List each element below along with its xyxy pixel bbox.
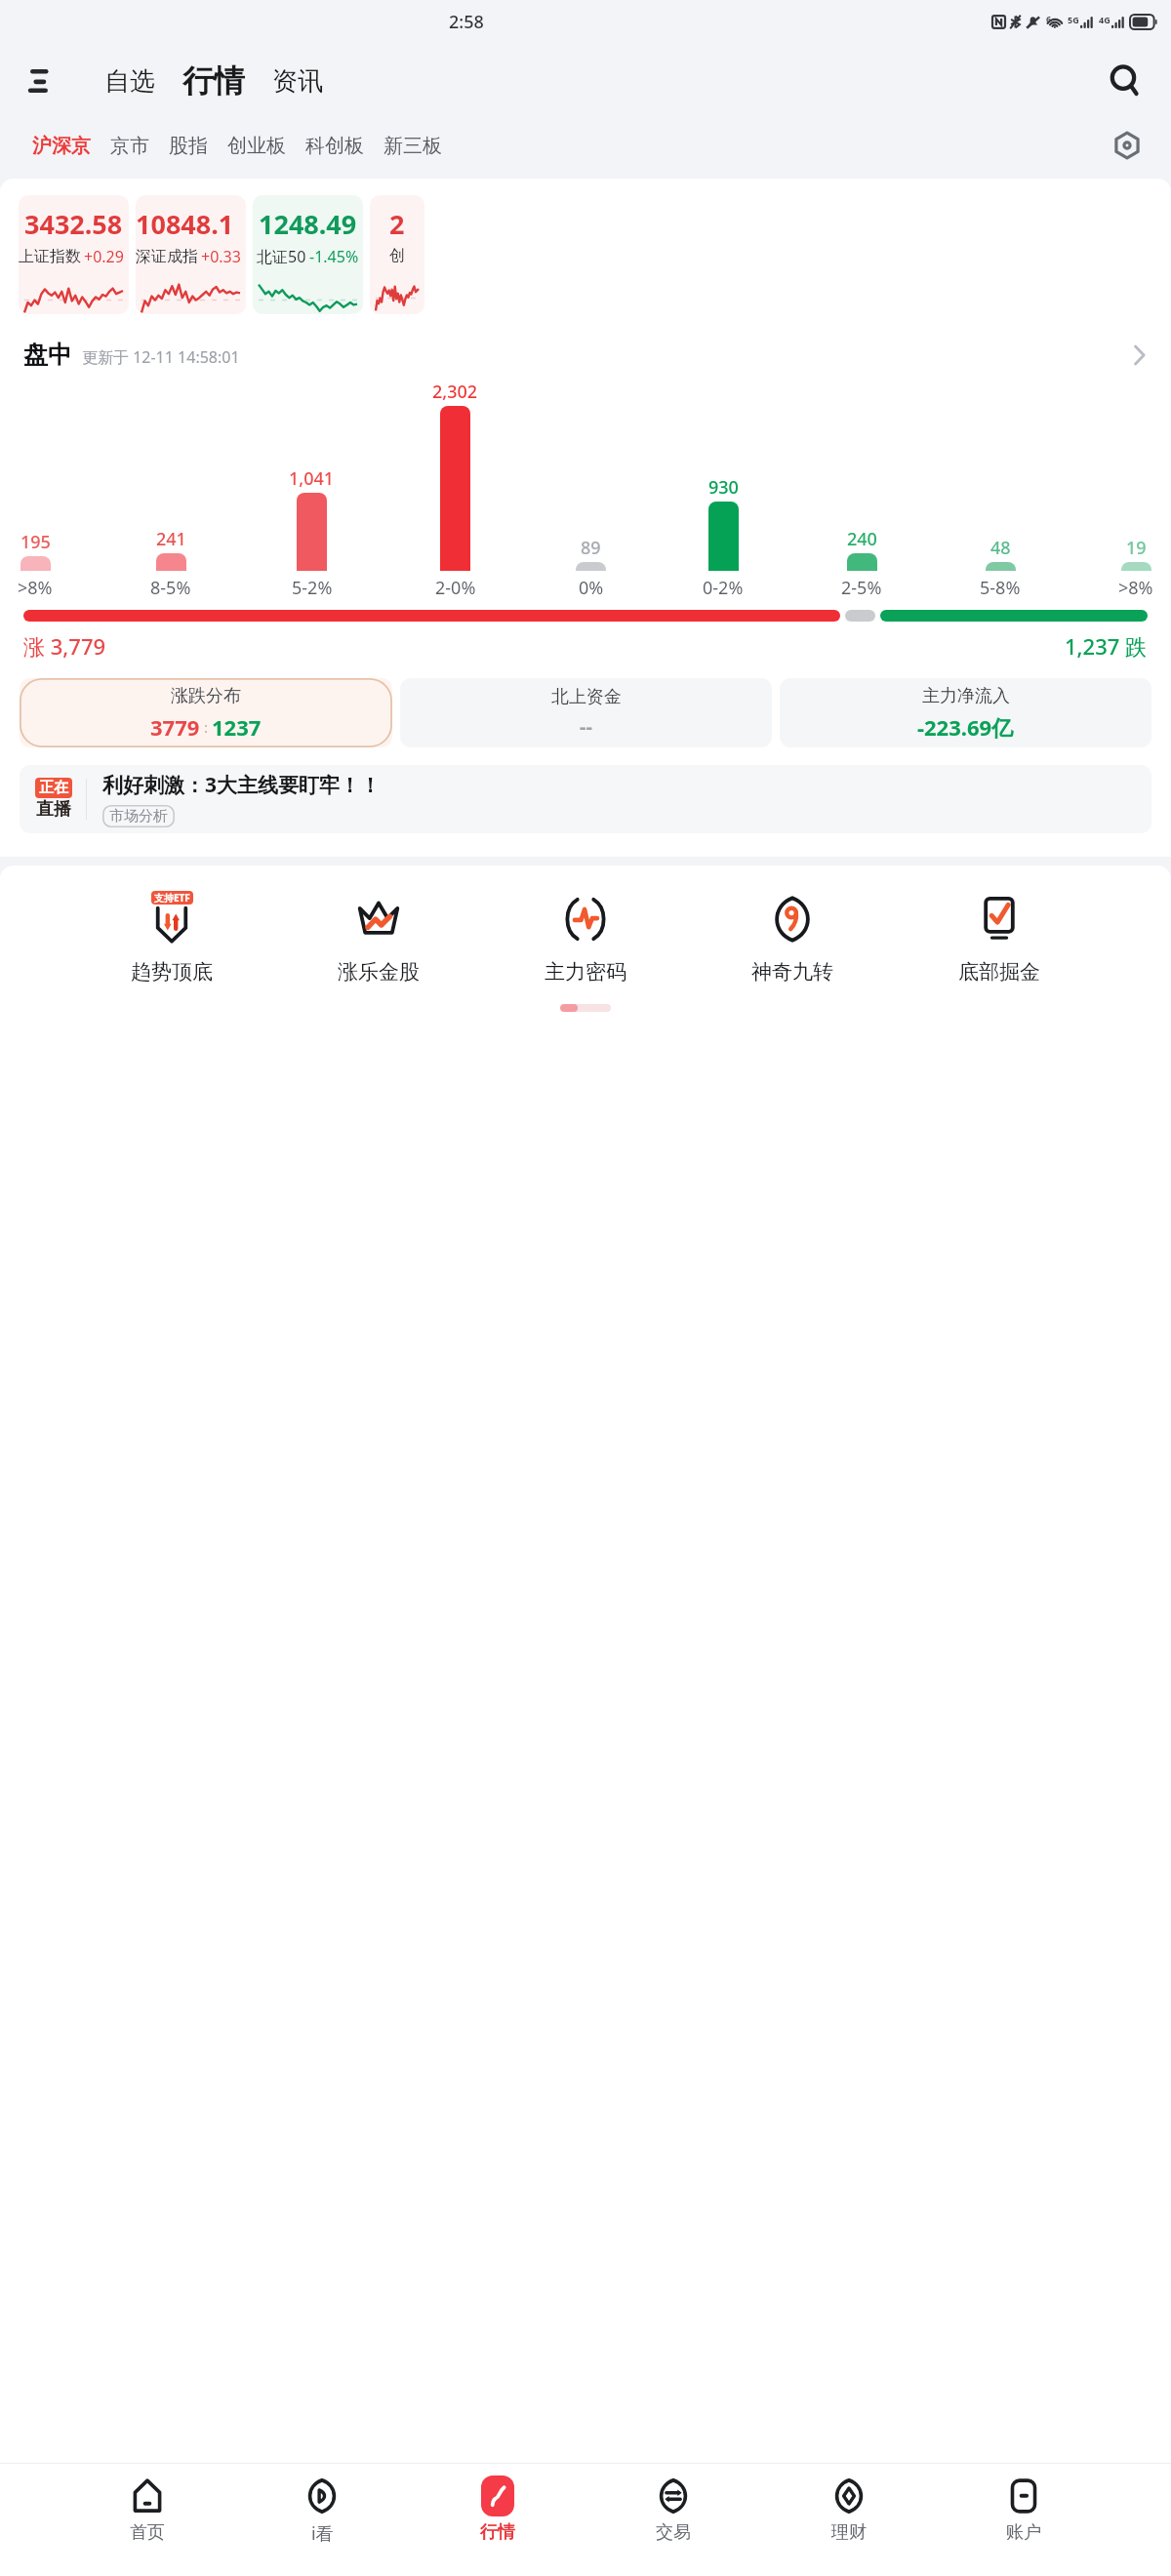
staticText: 理财 — [831, 2521, 867, 2544]
staticText: 上证指数 — [19, 247, 81, 266]
staticText: 股指 — [169, 134, 208, 158]
staticText: 沪深京 — [32, 134, 91, 158]
staticText: 深证成指 — [136, 247, 198, 266]
button[interactable]: 涨跌分布 — [20, 678, 392, 747]
staticText: +0.29% — [84, 246, 129, 267]
staticText: 利好刺激：3大主线要盯牢！！ — [102, 771, 382, 799]
staticText: 首页 — [130, 2521, 165, 2544]
staticText: 10848.10 — [136, 206, 246, 242]
button[interactable]: 3432.58 — [19, 195, 129, 314]
staticText: 账户 — [1006, 2521, 1041, 2544]
staticText: 2,302 — [432, 380, 478, 404]
button[interactable]: 主力密码 — [541, 885, 630, 988]
staticText: 6 — [1046, 13, 1052, 24]
staticText: 涨跌分布 — [171, 685, 241, 707]
button[interactable]: 主力净流入 — [780, 678, 1151, 747]
button[interactable]: 创业板 — [218, 126, 296, 166]
staticText: 1248.49 — [259, 206, 357, 242]
button[interactable]: 京市 — [101, 126, 159, 166]
staticText: 市场分析 — [109, 807, 168, 825]
button[interactable]: Customize categories — [1105, 123, 1150, 168]
button[interactable]: 行情 — [469, 2472, 526, 2548]
button[interactable]: 新三板 — [374, 126, 452, 166]
staticText: 0% — [579, 576, 604, 600]
button[interactable]: 北上资金 — [400, 678, 772, 747]
staticText: 2 — [389, 206, 405, 242]
staticText: 主力密码 — [545, 959, 626, 985]
staticText: 195 — [20, 530, 51, 554]
staticText: 5-2% — [292, 576, 333, 600]
staticText: 北证50 — [257, 246, 306, 267]
button[interactable]: 盘中 — [0, 334, 1171, 376]
staticText: 底部掘金 — [958, 959, 1040, 985]
staticText: 0-2% — [703, 576, 744, 600]
button[interactable]: 10848.10 — [136, 195, 246, 314]
button[interactable]: Search — [1101, 57, 1150, 105]
button[interactable]: Menu — [18, 60, 61, 102]
staticText: 趋势顶底 — [131, 959, 213, 985]
staticText: 241 — [156, 527, 186, 551]
staticText: 1,041 — [289, 466, 335, 491]
staticText: 19 — [1126, 536, 1147, 560]
button[interactable]: 支持ETF — [127, 885, 217, 988]
staticText: -- — [580, 713, 592, 740]
staticText: 交易 — [656, 2521, 691, 2544]
staticText: >8% — [18, 576, 53, 600]
staticText: -1.45% — [309, 246, 359, 267]
button[interactable]: 沪深京 — [22, 126, 101, 166]
staticText: 3779 — [150, 712, 200, 742]
staticText: 2-0% — [435, 576, 476, 600]
button[interactable]: 账户 — [995, 2472, 1052, 2548]
button[interactable]: 正在 — [20, 765, 1151, 833]
staticText: 创 — [389, 246, 405, 265]
staticText: 资讯 — [272, 65, 323, 98]
button[interactable]: 神奇九转 — [747, 885, 837, 988]
staticText: 更新于 12-11 14:58:01 — [82, 346, 240, 368]
button[interactable]: i看 — [294, 2472, 350, 2550]
button[interactable]: 底部掘金 — [954, 885, 1044, 988]
staticText: 5-8% — [980, 576, 1021, 600]
button[interactable]: 股指 — [159, 126, 218, 166]
staticText: i看 — [311, 2521, 334, 2546]
staticText: 2:58 — [449, 10, 484, 34]
staticText: +0.33% — [201, 246, 246, 267]
button[interactable]: 资讯 — [263, 60, 332, 103]
button[interactable]: 行情 — [174, 56, 254, 106]
staticText: 涨乐金股 — [338, 959, 420, 985]
button[interactable]: 科创板 — [296, 126, 374, 166]
staticText: 行情 — [480, 2521, 515, 2544]
button[interactable]: 1248.49 — [253, 195, 363, 314]
staticText: 北上资金 — [551, 686, 622, 708]
staticText: 直播 — [36, 798, 71, 821]
button[interactable]: 自选 — [96, 60, 164, 103]
staticText: 创业板 — [227, 134, 286, 158]
button[interactable]: 理财 — [821, 2472, 877, 2548]
staticText: 3432.58 — [24, 206, 123, 242]
staticText: -223.69亿 — [917, 712, 1014, 742]
button[interactable]: 2 — [370, 195, 424, 314]
staticText: 4G — [1099, 14, 1110, 25]
button[interactable]: 交易 — [645, 2472, 702, 2548]
staticText: 神奇九转 — [751, 959, 833, 985]
staticText: 1237 — [212, 712, 262, 742]
staticText: 京市 — [110, 134, 149, 158]
staticText: 新三板 — [384, 134, 442, 158]
staticText: : — [200, 717, 212, 737]
staticText: 930 — [708, 475, 739, 500]
staticText: 支持ETF — [154, 891, 190, 905]
staticText: 2-5% — [841, 576, 882, 600]
staticText: 涨 3,779 — [23, 631, 106, 661]
staticText: 行情 — [182, 61, 245, 101]
staticText: 240 — [847, 527, 877, 551]
staticText: 正在 — [39, 779, 68, 797]
staticText: 8-5% — [150, 576, 191, 600]
staticText: 5G — [1068, 14, 1079, 25]
staticText: 科创板 — [305, 134, 364, 158]
button[interactable]: 涨乐金股 — [334, 885, 424, 988]
staticText: 自选 — [104, 65, 155, 98]
staticText: 1,237 跌 — [1065, 631, 1148, 661]
staticText: 盘中 — [23, 340, 72, 370]
button[interactable]: 首页 — [119, 2472, 176, 2548]
staticText: 主力净流入 — [922, 685, 1010, 707]
staticText: 89 — [581, 536, 601, 560]
